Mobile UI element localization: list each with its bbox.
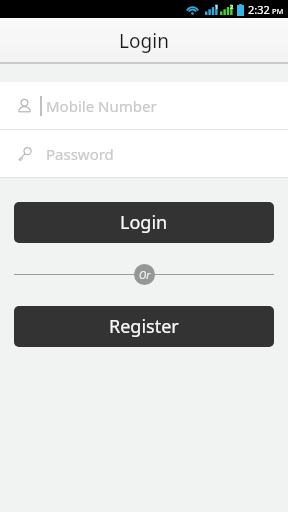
staticText: 2	[230, 3, 234, 11]
staticText: PM	[272, 6, 284, 16]
staticText: Register	[109, 314, 179, 339]
staticText: Password	[46, 144, 114, 164]
button[interactable]: Register	[14, 306, 274, 347]
staticText: Login	[120, 210, 168, 235]
button[interactable]: Login	[14, 202, 274, 243]
staticText: Or	[139, 268, 151, 282]
button[interactable]: Mobile Number	[0, 82, 288, 129]
staticText: 2:32	[248, 2, 270, 17]
staticText: Mobile Number	[46, 96, 157, 116]
staticText: 1	[215, 3, 219, 11]
staticText: Login	[119, 28, 169, 54]
button[interactable]: Password	[0, 130, 288, 177]
